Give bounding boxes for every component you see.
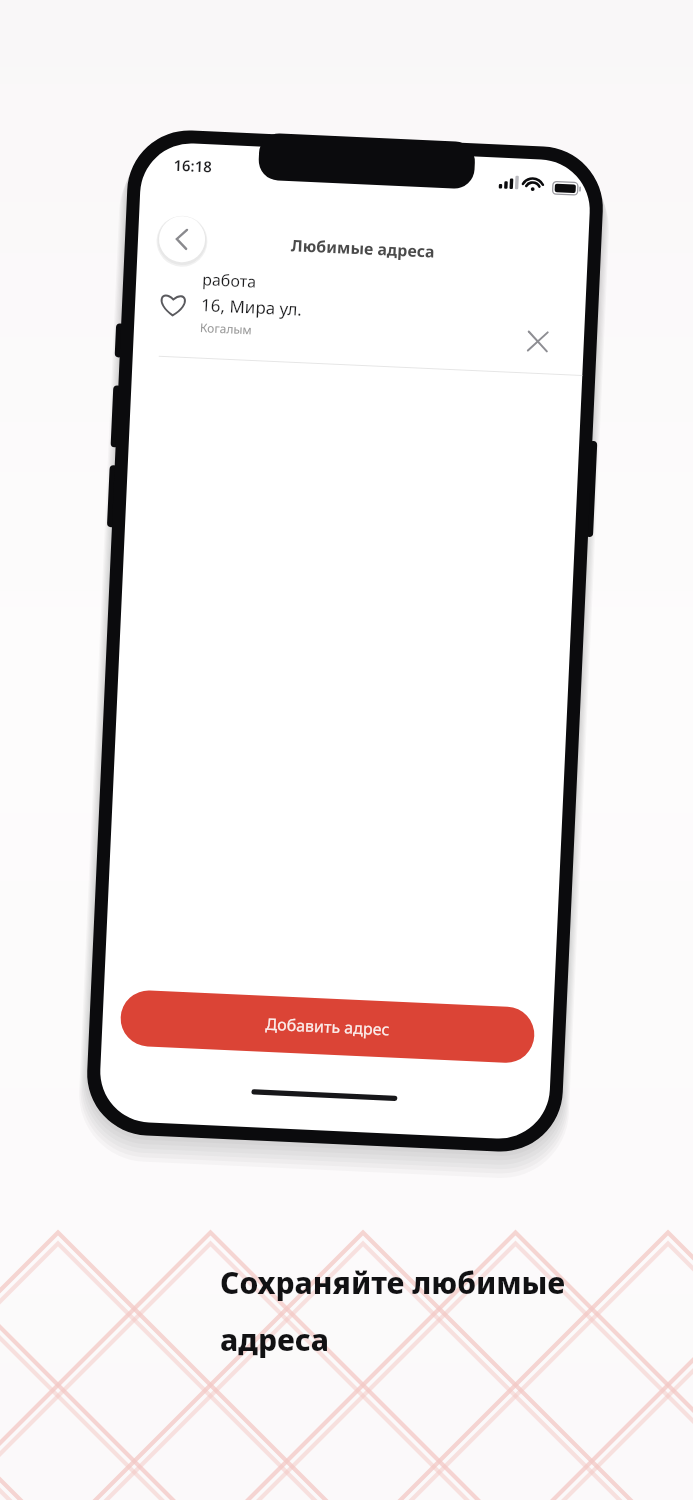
- staticText: 16:18: [173, 155, 213, 176]
- staticText: работа: [202, 268, 257, 293]
- button[interactable]: работа: [133, 259, 587, 375]
- staticText: адреса: [220, 1319, 330, 1360]
- button[interactable]: Добавить адрес: [119, 989, 535, 1064]
- button[interactable]: Назад: [158, 215, 206, 263]
- staticText: Любимые адреса: [138, 227, 588, 270]
- staticText: 16, Мира ул.: [201, 293, 302, 321]
- button[interactable]: Удалить адрес: [511, 318, 557, 364]
- staticText: Добавить адрес: [265, 1013, 390, 1040]
- staticText: Когалым: [200, 319, 252, 337]
- staticText: Сохраняйте любимые: [220, 1262, 566, 1303]
